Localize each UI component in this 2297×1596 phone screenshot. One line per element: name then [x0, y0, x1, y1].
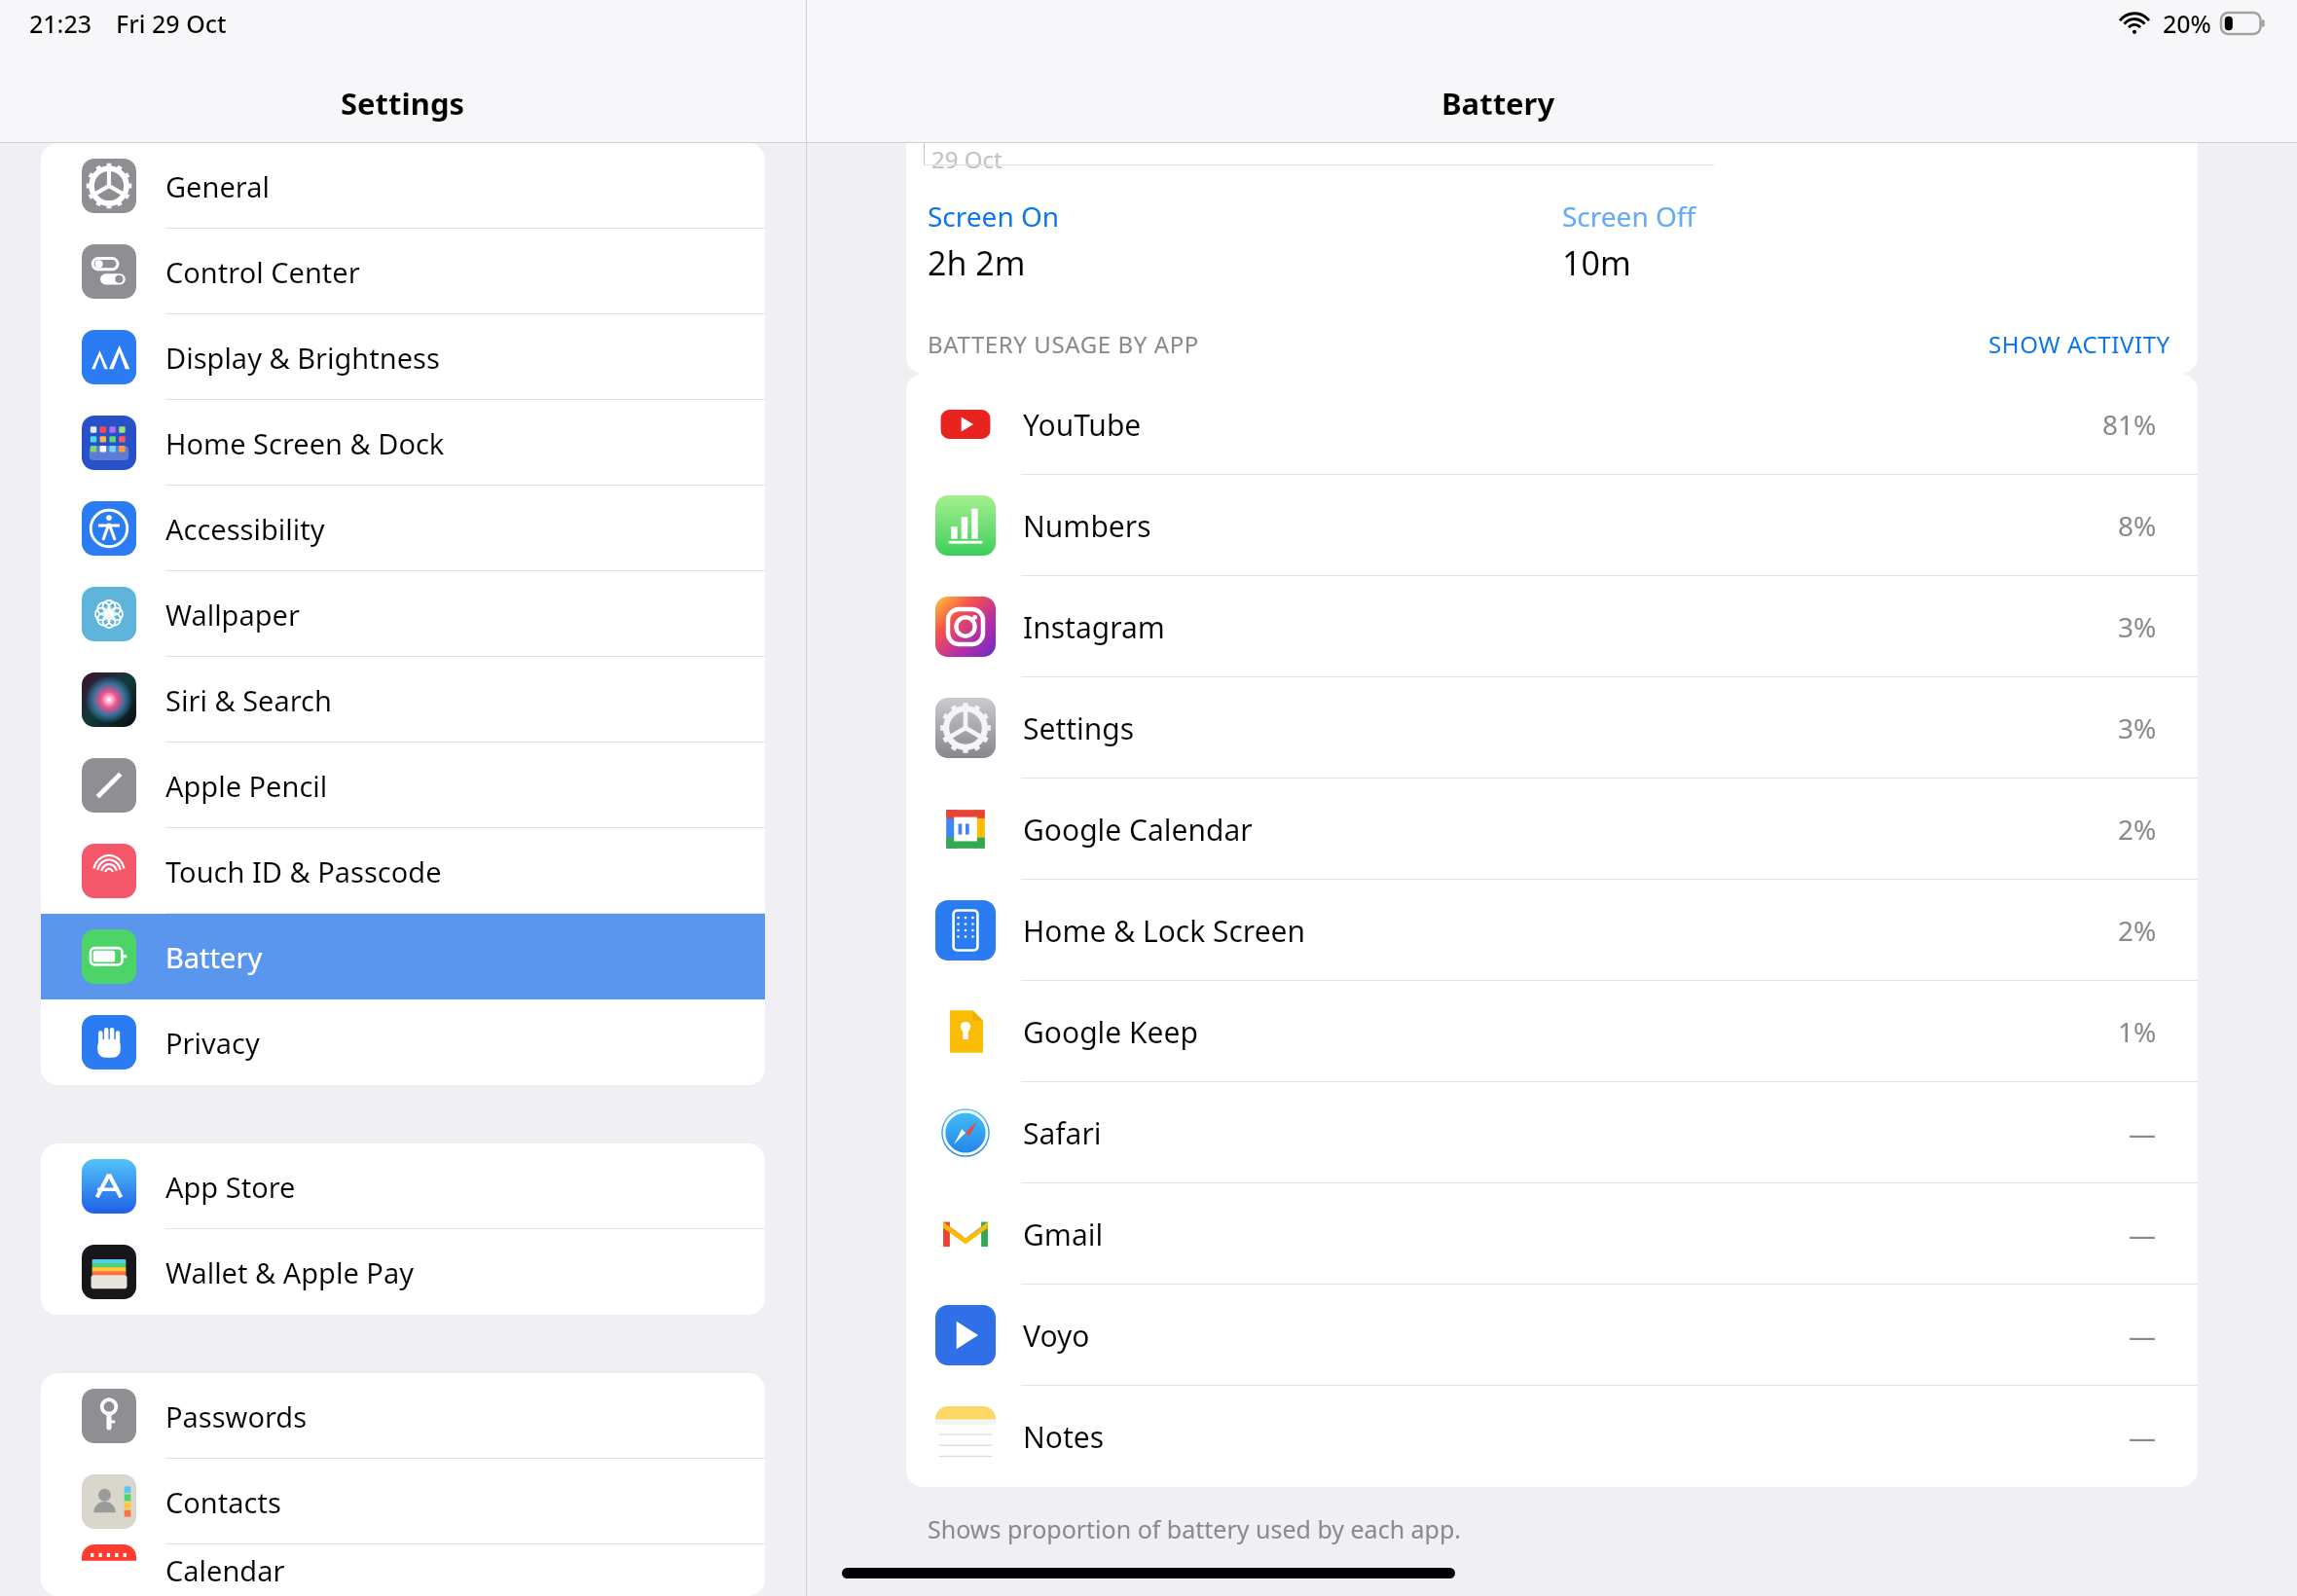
staticText: Gmail — [1023, 1215, 2129, 1254]
staticText: Numbers — [1023, 506, 2118, 546]
button[interactable]: Wallet & Apple Pay — [41, 1229, 765, 1315]
button[interactable]: General — [41, 143, 765, 229]
button[interactable]: Accessibility — [41, 486, 765, 571]
staticText: Battery — [1441, 83, 1555, 124]
button[interactable]: Privacy — [41, 999, 765, 1085]
staticText: Passwords — [165, 1397, 308, 1435]
button[interactable]: YouTube — [906, 374, 2198, 475]
staticText: 1% — [2118, 1013, 2157, 1050]
staticText: Touch ID & Passcode — [165, 852, 442, 890]
button[interactable]: Instagram — [906, 576, 2198, 677]
button[interactable]: Battery — [41, 914, 765, 999]
staticText: Fri 29 Oct — [116, 7, 227, 40]
button[interactable]: Home & Lock Screen — [906, 880, 2198, 981]
staticText: Contacts — [165, 1483, 281, 1521]
button[interactable]: App Store — [41, 1143, 765, 1229]
staticText: Shows proportion of battery used by each… — [928, 1512, 1462, 1545]
button[interactable]: Display & Brightness — [41, 314, 765, 400]
staticText: 3% — [2118, 709, 2157, 746]
staticText: 81% — [2102, 406, 2157, 443]
staticText: — — [2129, 1215, 2157, 1252]
button[interactable]: Siri & Search — [41, 657, 765, 743]
staticText: Control Center — [165, 253, 360, 291]
button[interactable]: Passwords — [41, 1373, 765, 1459]
staticText: Settings — [341, 83, 465, 124]
staticText: Display & Brightness — [165, 339, 440, 377]
staticText: Siri & Search — [165, 681, 332, 719]
button[interactable]: Notes — [906, 1386, 2198, 1487]
staticText: Instagram — [1023, 607, 2118, 647]
button[interactable]: Settings — [906, 677, 2198, 779]
staticText: Wallpaper — [165, 596, 300, 634]
staticText: Screen Off — [1562, 198, 1696, 235]
button[interactable]: Voyo — [906, 1285, 2198, 1386]
staticText: Google Calendar — [1023, 810, 2118, 850]
staticText: Privacy — [165, 1024, 260, 1062]
staticText: 2% — [2118, 811, 2157, 848]
button[interactable]: SHOW ACTIVITY — [1988, 328, 2170, 360]
button[interactable]: Calendar — [41, 1544, 765, 1596]
staticText: 3% — [2118, 608, 2157, 645]
staticText: General — [165, 167, 270, 205]
staticText: YouTube — [1023, 405, 2102, 445]
staticText: Voyo — [1023, 1316, 2129, 1356]
staticText: Screen On — [928, 198, 1060, 235]
staticText: Accessibility — [165, 510, 325, 548]
staticText: — — [2129, 1114, 2157, 1151]
staticText: Wallet & Apple Pay — [165, 1253, 414, 1291]
button[interactable]: Home Screen & Dock — [41, 400, 765, 486]
staticText: 8% — [2118, 507, 2157, 544]
staticText: Settings — [1023, 708, 2118, 748]
other: Battery 20 percent — [2221, 13, 2266, 34]
staticText: Google Keep — [1023, 1012, 2118, 1052]
button[interactable]: Gmail — [906, 1183, 2198, 1285]
staticText: Battery — [165, 938, 263, 976]
button[interactable]: Touch ID & Passcode — [41, 828, 765, 914]
button[interactable]: Control Center — [41, 229, 765, 314]
button[interactable]: Google Keep — [906, 981, 2198, 1082]
button[interactable]: Apple Pencil — [41, 743, 765, 828]
button[interactable]: Safari — [906, 1082, 2198, 1183]
staticText: 21:23 — [29, 7, 92, 40]
other: Wi-Fi — [2118, 11, 2151, 36]
staticText: — — [2129, 1317, 2157, 1354]
staticText: Calendar — [165, 1551, 285, 1589]
button[interactable]: Numbers — [906, 475, 2198, 576]
staticText: 2h 2m — [928, 240, 1026, 285]
staticText: SHOW ACTIVITY — [1988, 328, 2170, 360]
staticText: Notes — [1023, 1417, 2129, 1457]
button[interactable]: Contacts — [41, 1459, 765, 1544]
staticText: Safari — [1023, 1113, 2129, 1153]
staticText: Home & Lock Screen — [1023, 911, 2118, 951]
staticText: — — [2129, 1418, 2157, 1455]
staticText: Apple Pencil — [165, 767, 328, 805]
staticText: Home Screen & Dock — [165, 424, 445, 462]
staticText: App Store — [165, 1168, 296, 1206]
staticText: 20% — [2163, 7, 2211, 40]
staticText: 2% — [2118, 912, 2157, 949]
staticText: BATTERY USAGE BY APP — [928, 328, 1988, 360]
button[interactable]: Wallpaper — [41, 571, 765, 657]
staticText: 10m — [1562, 240, 1631, 285]
staticText: 29 Oct — [931, 143, 1003, 175]
button[interactable]: Google Calendar — [906, 779, 2198, 880]
